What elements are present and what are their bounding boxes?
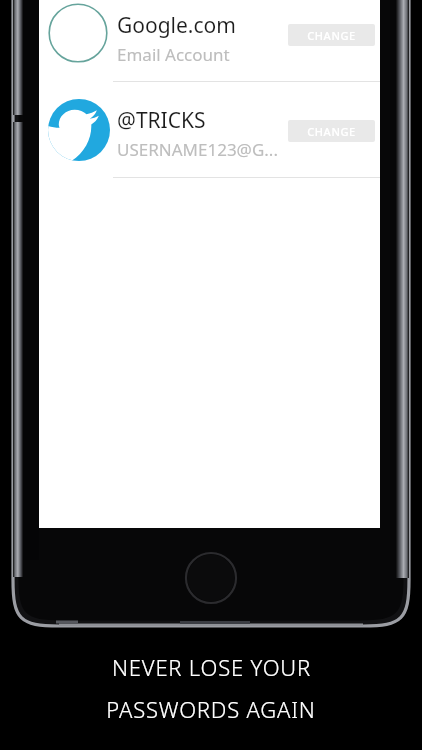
button[interactable]: Change password for @TRICKS — [288, 120, 375, 142]
staticText: CHANGE — [307, 124, 356, 139]
other: Twitter avatar — [48, 99, 110, 161]
button[interactable]: @TRICKS — [117, 106, 307, 161]
staticText: Email Account — [117, 43, 230, 66]
staticText: @TRICKS — [117, 106, 206, 135]
button[interactable]: Change password for Google.com — [288, 24, 375, 46]
staticText: Google.com — [117, 11, 236, 40]
staticText: NEVER LOSE YOUR — [112, 652, 311, 682]
staticText: USERNAME123@G... — [117, 138, 278, 161]
other: Google.com avatar — [48, 3, 108, 63]
button[interactable]: Google.com — [117, 11, 307, 66]
staticText: CHANGE — [307, 28, 356, 43]
staticText: PASSWORDS AGAIN — [106, 694, 316, 724]
